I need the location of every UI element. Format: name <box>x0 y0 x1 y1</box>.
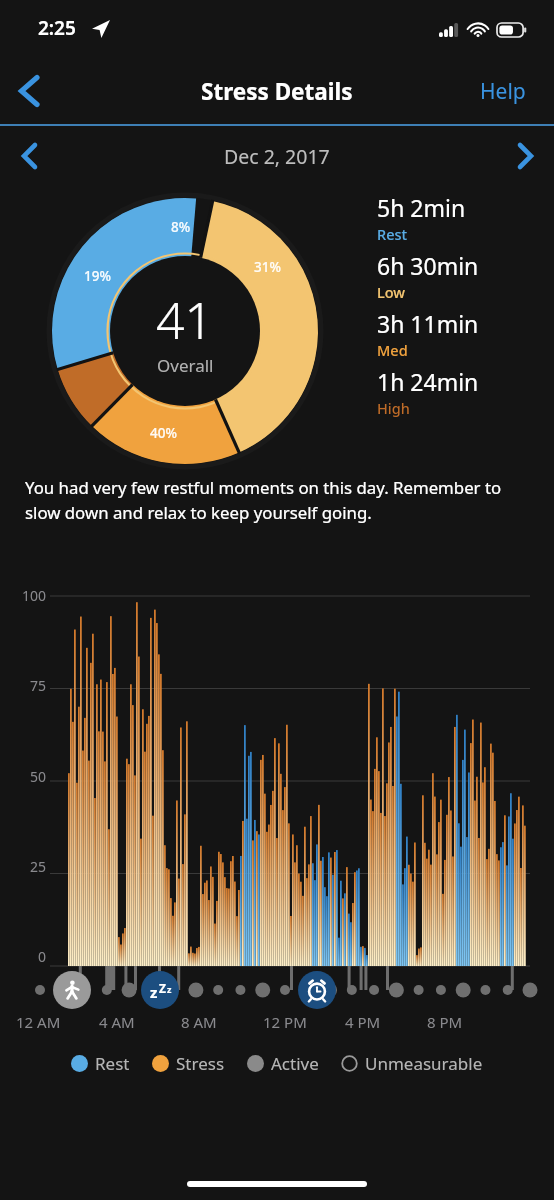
staticText: 31% <box>254 258 281 276</box>
button[interactable]: Next day <box>496 127 554 185</box>
staticText: Stress <box>176 1052 225 1075</box>
staticText: Active <box>271 1052 319 1075</box>
staticText: Rest <box>95 1052 130 1075</box>
staticText: 100 <box>14 586 46 605</box>
button[interactable]: Alarm <box>298 971 336 1009</box>
staticText: Stress Details <box>201 76 353 107</box>
staticText: Dec 2, 2017 <box>224 143 330 170</box>
staticText: 12 PM <box>263 1012 307 1032</box>
staticText: 4 AM <box>99 1012 135 1032</box>
staticText: 8 AM <box>181 1012 217 1032</box>
staticText: z <box>150 982 158 1002</box>
staticText: You had very few restful moments on this… <box>25 476 502 524</box>
staticText: 3h 11min <box>377 308 479 339</box>
button[interactable]: Activity <box>53 971 91 1009</box>
staticText: 25 <box>14 857 46 876</box>
staticText: 12 AM <box>16 1012 61 1032</box>
button[interactable]: Sleep <box>141 971 179 1009</box>
button[interactable]: Rest <box>71 1052 130 1075</box>
staticText: 6h 30min <box>377 250 479 281</box>
staticText: Rest <box>377 224 408 244</box>
staticText: Z <box>159 980 166 996</box>
staticText: Med <box>377 340 408 360</box>
staticText: 41 <box>156 286 214 354</box>
staticText: z <box>167 983 172 995</box>
staticText: 19% <box>84 267 111 285</box>
button[interactable]: Active <box>247 1052 319 1075</box>
staticText: Help <box>480 77 526 106</box>
staticText: 50 <box>14 767 46 786</box>
staticText: 8 PM <box>427 1012 463 1032</box>
staticText: 1h 24min <box>377 366 479 397</box>
staticText: 40% <box>150 424 177 442</box>
button[interactable]: Stress <box>152 1052 225 1075</box>
button[interactable]: Back <box>0 63 56 119</box>
staticText: 5h 2min <box>377 192 466 223</box>
staticText: 8% <box>171 218 191 236</box>
staticText: High <box>377 398 410 418</box>
staticText: Overall <box>157 354 214 377</box>
button[interactable]: Unmeasurable <box>341 1052 483 1075</box>
staticText: Unmeasurable <box>365 1052 483 1075</box>
button[interactable]: Help <box>472 69 534 114</box>
staticText: 75 <box>14 676 46 695</box>
staticText: 4 PM <box>345 1012 381 1032</box>
staticText: 0 <box>14 947 46 966</box>
button[interactable]: Previous day <box>0 127 58 185</box>
staticText: Low <box>377 282 406 302</box>
staticText: 2:25 <box>38 15 76 41</box>
